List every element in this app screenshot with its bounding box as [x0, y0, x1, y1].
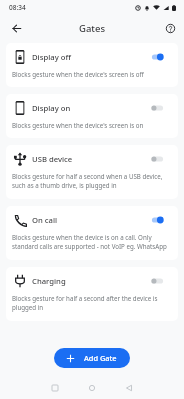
button[interactable]: Back — [121, 380, 137, 396]
staticText: Blocks gesture when the device is on a c… — [12, 233, 170, 251]
button[interactable]: Off — [151, 153, 164, 165]
button[interactable]: Charging — [6, 267, 178, 321]
staticText: On call — [32, 215, 151, 225]
staticText: Add Gate — [84, 353, 117, 363]
button[interactable]: Home — [84, 380, 100, 396]
button[interactable]: USB device — [6, 145, 178, 199]
staticText: Display on — [32, 103, 151, 113]
button[interactable]: Recents — [47, 380, 63, 396]
staticText: Blocks gesture when the device's screen … — [12, 121, 170, 129]
staticText: 08:34 — [9, 3, 26, 12]
button[interactable]: Display on — [6, 94, 178, 138]
button[interactable]: Off — [151, 102, 164, 114]
button[interactable]: On — [151, 51, 164, 63]
staticText: Blocks gesture when the device's screen … — [12, 70, 170, 78]
staticText: USB device — [32, 154, 151, 164]
staticText: Gates — [79, 22, 106, 35]
button[interactable]: On — [151, 214, 164, 226]
button[interactable]: Add Gate — [54, 348, 130, 368]
staticText: Blocks gesture for half a second after t… — [12, 294, 170, 312]
button[interactable]: On call — [6, 206, 178, 260]
button[interactable]: Help — [160, 18, 180, 38]
staticText: Display off — [32, 52, 151, 62]
button[interactable]: Display off — [6, 43, 178, 87]
button[interactable]: Off — [151, 275, 164, 287]
staticText: Charging — [32, 276, 151, 286]
button[interactable]: Back — [6, 18, 26, 38]
staticText: Blocks gesture for half a second when a … — [12, 172, 170, 190]
